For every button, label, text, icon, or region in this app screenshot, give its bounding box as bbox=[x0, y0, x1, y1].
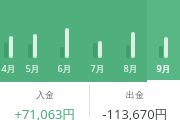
button[interactable]: 出金 bbox=[90, 82, 180, 120]
staticText: 9月 bbox=[156, 62, 171, 74]
staticText: 5月 bbox=[25, 62, 40, 74]
staticText: 4月 bbox=[1, 62, 16, 74]
button[interactable]: 4月 bbox=[0, 0, 16, 82]
staticText: 入金 bbox=[36, 89, 54, 100]
staticText: +71,063円 bbox=[14, 105, 76, 120]
button[interactable]: 8月 bbox=[114, 0, 147, 82]
button[interactable]: 7月 bbox=[81, 0, 114, 82]
button[interactable]: 6月 bbox=[48, 0, 81, 82]
button[interactable]: 5月 bbox=[16, 0, 48, 82]
staticText: 8月 bbox=[123, 62, 138, 74]
staticText: -113,670円 bbox=[102, 105, 168, 120]
staticText: 出金 bbox=[126, 89, 144, 100]
button[interactable]: 入金 bbox=[0, 82, 89, 120]
button[interactable]: 9月 bbox=[147, 0, 180, 82]
staticText: 7月 bbox=[90, 62, 105, 74]
staticText: 6月 bbox=[57, 62, 72, 74]
